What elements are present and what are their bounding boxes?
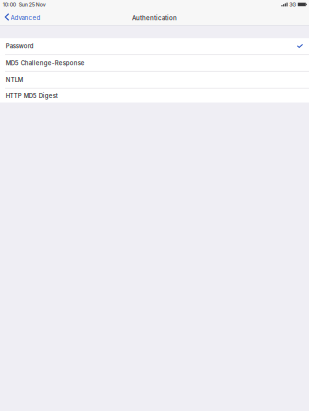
staticText: Password bbox=[6, 42, 34, 50]
staticText: Authentication bbox=[132, 14, 177, 22]
button[interactable]: Advanced bbox=[0, 10, 45, 24]
button[interactable]: MD5 Challenge-Response bbox=[0, 55, 309, 72]
button[interactable]: HTTP MD5 Digest bbox=[0, 89, 309, 102]
staticText: HTTP MD5 Digest bbox=[6, 92, 58, 99]
staticText: 10:00 bbox=[3, 1, 16, 8]
staticText: Sun 25 Nov bbox=[19, 1, 46, 8]
staticText: Advanced bbox=[10, 14, 40, 21]
button[interactable]: NTLM bbox=[0, 72, 309, 89]
button[interactable]: Password bbox=[0, 38, 309, 55]
staticText: MD5 Challenge-Response bbox=[6, 59, 85, 67]
staticText: NTLM bbox=[6, 76, 23, 84]
staticText: 3G bbox=[289, 1, 296, 8]
